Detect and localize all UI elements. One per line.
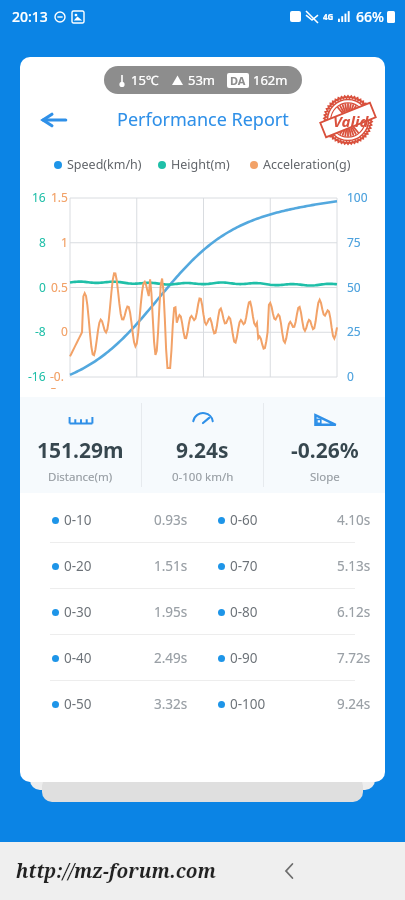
staticText: -16 xyxy=(28,368,46,384)
staticText: 100 xyxy=(347,189,368,205)
staticText: 1 xyxy=(61,234,68,250)
staticText: 0-100 km/h xyxy=(172,469,234,485)
button[interactable]: 151.29m xyxy=(20,397,141,493)
staticText: 16 xyxy=(32,189,46,205)
staticText: 0.5 xyxy=(51,279,68,295)
staticText: 0 xyxy=(347,368,354,384)
staticText: -8 xyxy=(35,323,46,339)
button[interactable]: -0.26% xyxy=(264,397,385,493)
staticText: 20:13 xyxy=(12,7,48,26)
staticText: 0-90 xyxy=(230,649,258,667)
staticText: Acceleration(g) xyxy=(263,156,351,173)
button[interactable]: Back xyxy=(34,100,74,140)
staticText: 2.49s xyxy=(154,649,188,667)
button[interactable]: 0-10 xyxy=(20,497,385,542)
button[interactable]: Back xyxy=(270,851,310,891)
staticText: Distance(m) xyxy=(48,469,113,485)
staticText: 0-40 xyxy=(64,649,92,667)
button[interactable]: 0-30 xyxy=(20,589,385,634)
staticText: 5.13s xyxy=(337,557,371,575)
button[interactable]: 15℃ xyxy=(118,71,288,89)
staticText: Performance Report xyxy=(117,107,289,132)
staticText: 0-100 xyxy=(230,695,266,713)
staticText: 66% xyxy=(356,7,384,26)
staticText: -0.26% xyxy=(291,436,359,465)
staticText: 1.51s xyxy=(154,557,188,575)
staticText: 8 xyxy=(39,234,46,250)
staticText: 9.24s xyxy=(337,695,371,713)
staticText: 9.24s xyxy=(176,436,229,465)
staticText: 6.12s xyxy=(337,603,371,621)
staticText: DA xyxy=(230,73,246,88)
staticText: Slope xyxy=(310,469,340,485)
staticText: Valid xyxy=(333,111,369,131)
staticText: 4G xyxy=(323,11,334,22)
button[interactable]: 0-50 xyxy=(20,681,385,726)
staticText: 25 xyxy=(347,323,361,339)
button[interactable]: 0-20 xyxy=(20,543,385,588)
button[interactable]: 9.24s xyxy=(142,397,263,493)
staticText: Speed(km/h) xyxy=(67,156,142,173)
staticText: 0-50 xyxy=(64,695,92,713)
staticText: 1.5 xyxy=(51,189,68,205)
staticText: 15℃ xyxy=(131,71,159,89)
staticText: 151.29m xyxy=(37,436,124,465)
staticText: 0-80 xyxy=(230,603,258,621)
staticText: 0-60 xyxy=(230,511,258,529)
staticText: 4.10s xyxy=(337,511,371,529)
staticText: 75 xyxy=(347,234,361,250)
staticText: 0 xyxy=(39,279,46,295)
button[interactable]: 0-40 xyxy=(20,635,385,680)
staticText: -0.5 xyxy=(50,368,68,389)
staticText: 0-10 xyxy=(64,511,92,529)
staticText: 0.93s xyxy=(154,511,188,529)
staticText: 0 xyxy=(61,323,68,339)
staticText: 3.32s xyxy=(154,695,188,713)
staticText: 0-20 xyxy=(64,557,92,575)
staticText: 1.95s xyxy=(154,603,188,621)
staticText: 53m xyxy=(188,71,216,89)
staticText: http://mz-forum.com xyxy=(16,858,216,884)
staticText: 0-70 xyxy=(230,557,258,575)
staticText: 7.72s xyxy=(337,649,371,667)
staticText: 162m xyxy=(253,71,288,89)
staticText: 50 xyxy=(347,279,361,295)
staticText: 0-30 xyxy=(64,603,92,621)
staticText: Height(m) xyxy=(171,156,230,173)
